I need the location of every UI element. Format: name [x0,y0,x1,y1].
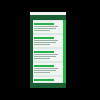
button[interactable] [33,49,63,61]
button[interactable] [33,35,63,47]
button[interactable] [33,77,63,82]
button[interactable] [33,21,63,33]
button[interactable] [33,63,63,75]
